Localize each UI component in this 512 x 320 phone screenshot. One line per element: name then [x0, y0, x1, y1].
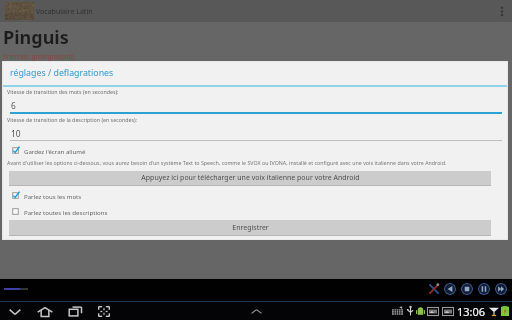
button[interactable]: Pause — [478, 283, 490, 295]
button[interactable]: Home — [32, 302, 58, 320]
button[interactable]: Appuyez ici pour télécharger une voix it… — [9, 171, 491, 185]
button[interactable]: Fast forward — [495, 283, 507, 295]
button[interactable]: Gardez l'écran allumé — [11, 146, 86, 155]
button[interactable]: Parlez toutes les descriptions — [11, 207, 108, 216]
staticText: 10 — [11, 128, 21, 139]
button[interactable]: Screenshot — [91, 302, 117, 320]
staticText: Francais: gros/gras(adj) — [3, 52, 75, 61]
staticText: Parlez tous les mots — [24, 192, 82, 200]
staticText: réglages / deflagrationes — [10, 67, 114, 79]
staticText: Pinguis — [3, 25, 69, 50]
staticText: Vitesse de transition de la description … — [7, 116, 137, 123]
button[interactable]: More options — [492, 0, 512, 22]
staticText: Parlez toutes les descriptions — [24, 208, 108, 216]
staticText: 6 — [11, 100, 16, 111]
button[interactable]: Back — [2, 302, 28, 320]
staticText: Vitesse de transition des mots (en secon… — [7, 88, 119, 95]
staticText: Enregistrer — [232, 223, 269, 233]
staticText: 13:06 — [457, 304, 486, 319]
button[interactable]: Recents — [62, 302, 88, 320]
staticText: Avant d'utiliser les options ci-dessous,… — [7, 159, 447, 166]
staticText: Vocabulaire Latin — [36, 7, 93, 17]
staticText: Gardez l'écran allumé — [24, 147, 86, 155]
button[interactable]: Stop — [461, 283, 473, 295]
button[interactable]: Parlez tous les mots — [11, 191, 82, 200]
button[interactable]: Rewind — [444, 283, 456, 295]
button[interactable]: Expand — [246, 302, 266, 320]
button[interactable]: Enregistrer — [9, 220, 491, 235]
button[interactable]: Tools — [428, 283, 440, 295]
staticText: Appuyez ici pour télécharger une voix it… — [141, 173, 360, 183]
